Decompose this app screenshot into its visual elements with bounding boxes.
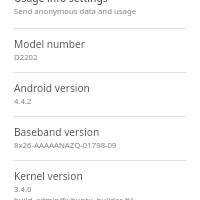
staticText: Kernel version	[14, 169, 83, 183]
button[interactable]: Kernel version	[0, 161, 200, 200]
staticText: 4.4.2	[14, 96, 32, 107]
staticText: Send anonymous data and usage	[14, 6, 137, 17]
staticText: Android version	[14, 81, 90, 95]
button[interactable]: Baseband version	[0, 117, 200, 160]
staticText: build_admin@ubuntu_builder #1	[14, 195, 135, 200]
staticText: 8x26-AAAAANAZQ-01798-09	[14, 140, 117, 151]
staticText: Baseband version	[14, 125, 100, 139]
button[interactable]: Usage info settings	[0, 0, 200, 28]
staticText: Model number	[14, 37, 86, 51]
button[interactable]: Model number	[0, 29, 200, 72]
staticText: 3.4.0	[14, 184, 32, 195]
staticText: D2202	[14, 52, 38, 63]
staticText: Usage info settings	[14, 0, 108, 5]
button[interactable]: Android version	[0, 73, 200, 116]
